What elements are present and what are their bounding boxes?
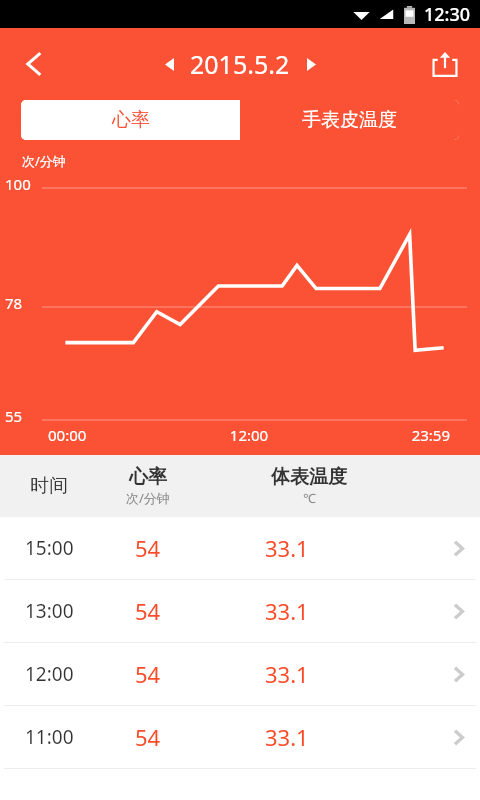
staticText: 33.1 — [265, 533, 309, 563]
staticText: 手表皮温度 — [302, 108, 397, 132]
button[interactable]: 12:00 — [0, 643, 480, 706]
staticText: 23:59 — [316, 425, 450, 445]
button[interactable]: 心率 — [21, 100, 240, 140]
staticText: 00:00 — [48, 425, 182, 445]
staticText: 100 — [5, 174, 31, 194]
staticText: 心率 — [129, 465, 167, 489]
staticText: 15:00 — [25, 535, 74, 561]
button[interactable]: 15:00 — [0, 517, 480, 580]
staticText: 54 — [135, 659, 161, 689]
staticText: 54 — [135, 596, 161, 626]
button[interactable]: 手表皮温度 — [240, 100, 459, 140]
staticText: 33.1 — [265, 596, 309, 626]
staticText: 次/分钟 — [126, 489, 170, 507]
staticText: 33.1 — [265, 659, 309, 689]
staticText: 次/分钟 — [22, 152, 66, 170]
staticText: 12:30 — [424, 2, 471, 27]
button[interactable]: Back — [8, 38, 60, 90]
button[interactable]: Previous day — [152, 47, 186, 81]
button[interactable]: Next day — [294, 47, 328, 81]
button[interactable]: 11:00 — [0, 706, 480, 769]
staticText: 时间 — [30, 474, 68, 498]
staticText: 33.1 — [265, 722, 309, 752]
staticText: 54 — [135, 533, 161, 563]
staticText: 54 — [135, 722, 161, 752]
staticText: 心率 — [112, 108, 150, 132]
button[interactable]: Share — [420, 39, 470, 89]
staticText: 55 — [5, 406, 23, 426]
staticText: 13:00 — [25, 598, 74, 624]
staticText: 体表温度 — [271, 465, 347, 489]
staticText: 11:00 — [25, 724, 74, 750]
staticText: ℃ — [303, 489, 316, 507]
staticText: 78 — [5, 293, 23, 313]
staticText: 12:00 — [182, 425, 316, 445]
staticText: 2015.5.2 — [190, 47, 290, 81]
staticText: 12:00 — [25, 661, 74, 687]
button[interactable]: 13:00 — [0, 580, 480, 643]
